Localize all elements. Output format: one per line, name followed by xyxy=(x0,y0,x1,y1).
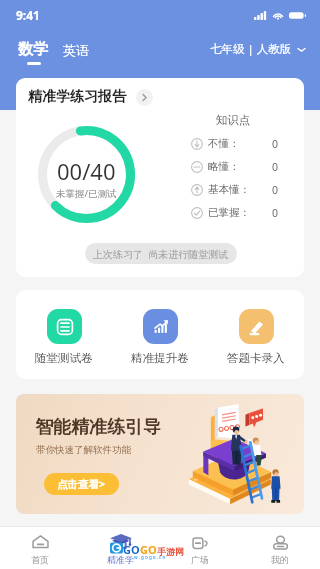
staticText: 数学 xyxy=(18,40,48,59)
staticText: 我的 xyxy=(271,554,289,565)
staticText: 广场 xyxy=(191,554,209,565)
staticText: 00/40 xyxy=(57,156,116,186)
staticText: 0 xyxy=(272,160,279,174)
button[interactable]: 我的 xyxy=(240,531,320,565)
button[interactable]: 广场 xyxy=(160,531,240,565)
staticText: 精准提升卷 xyxy=(131,351,189,365)
staticText: 精准学练习报告 xyxy=(28,88,126,106)
button[interactable]: 上次练习了 尚未进行随堂测试 xyxy=(85,243,237,264)
button[interactable]: 首页 xyxy=(0,531,80,565)
staticText: GO xyxy=(123,542,140,557)
staticText: 英语 xyxy=(63,42,89,58)
staticText: 随堂测试卷 xyxy=(35,351,93,365)
staticText: w . g o g o . c n xyxy=(134,554,166,560)
staticText: 9:41 xyxy=(16,7,40,23)
staticText: 基本懂： xyxy=(208,183,250,196)
staticText: 0 xyxy=(272,206,279,220)
staticText: 精准学 xyxy=(107,554,134,565)
button[interactable]: 点击查看> xyxy=(44,473,119,495)
staticText: 略懂： xyxy=(208,160,240,173)
staticText: GO xyxy=(140,542,157,557)
button[interactable]: 精准学练习报告 xyxy=(22,84,159,110)
staticText: 已掌握： xyxy=(208,206,250,219)
button[interactable]: 七年级 | 人教版 xyxy=(204,38,320,60)
button[interactable]: 随堂测试卷 xyxy=(16,290,112,365)
staticText: 上次练习了 尚未进行随堂测试 xyxy=(93,247,229,261)
button[interactable]: 英语 xyxy=(54,40,98,60)
staticText: 知识点 xyxy=(215,113,251,127)
other: 查看报告 xyxy=(136,89,153,106)
staticText: 带你快速了解软件功能 xyxy=(36,444,131,456)
button[interactable]: 答题卡录入 xyxy=(208,290,304,365)
staticText: 智能精准练引导 xyxy=(35,416,161,439)
button[interactable]: 精准提升卷 xyxy=(112,290,208,365)
staticText: 手游网 xyxy=(157,546,184,557)
button[interactable]: 精准学 xyxy=(80,531,160,565)
staticText: 0 xyxy=(272,137,279,151)
staticText: 不懂： xyxy=(208,137,240,150)
staticText: 答题卡录入 xyxy=(227,351,285,365)
button[interactable]: 数学 xyxy=(0,38,54,61)
staticText: 0 xyxy=(272,183,279,197)
staticText: 首页 xyxy=(31,554,49,565)
button[interactable]: 智能精准练引导 xyxy=(16,394,304,514)
staticText: 点击查看> xyxy=(57,477,106,491)
staticText: 七年级 | 人教版 xyxy=(210,41,292,57)
staticText: 未掌握/已测试 xyxy=(56,187,117,200)
